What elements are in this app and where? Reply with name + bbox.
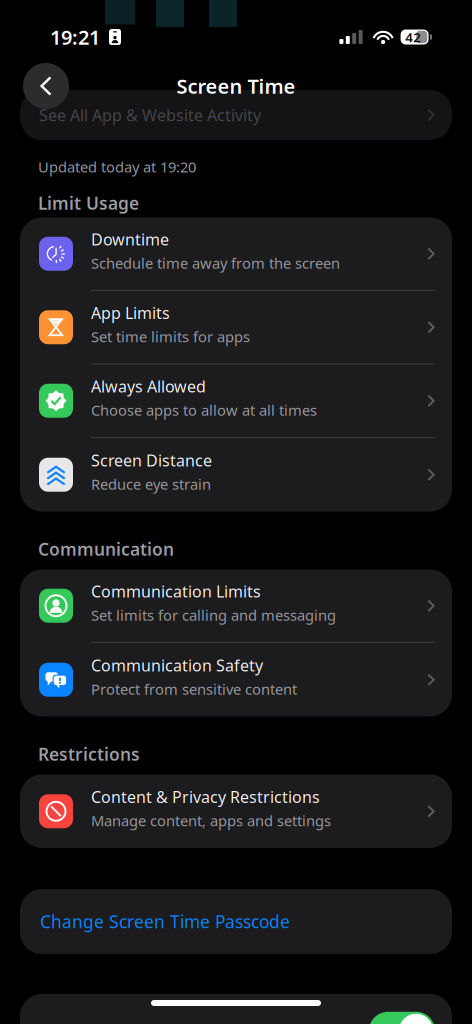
staticText: Communication Safety — [91, 655, 263, 676]
staticText: Set time limits for apps — [91, 327, 250, 346]
staticText: Limit Usage — [38, 191, 139, 214]
staticText: Manage content, apps and settings — [91, 811, 331, 830]
staticText: Screen Time — [176, 73, 295, 99]
staticText: 42 — [405, 28, 421, 46]
staticText: Change Screen Time Passcode — [40, 910, 290, 933]
button[interactable]: Change Screen Time Passcode — [20, 889, 452, 954]
button[interactable]: App Limits — [20, 291, 452, 364]
staticText: Always Allowed — [91, 376, 206, 397]
staticText: Content & Privacy Restrictions — [91, 786, 320, 807]
staticText: Restrictions — [38, 742, 140, 765]
staticText: Choose apps to allow at all times — [91, 400, 317, 420]
button[interactable]: Communication Limits — [20, 569, 452, 643]
button[interactable]: Content & Privacy Restrictions — [20, 774, 452, 848]
staticText: Screen Distance — [91, 450, 212, 471]
button[interactable]: Always Allowed — [20, 364, 452, 438]
button[interactable]: Screen Distance — [20, 438, 452, 511]
staticText: See All App & Website Activity — [39, 104, 261, 126]
staticText: Updated today at 19:20 — [38, 157, 196, 176]
button[interactable]: Downtime — [20, 217, 452, 291]
staticText: Set limits for calling and messaging — [91, 605, 336, 625]
staticText: Downtime — [91, 229, 169, 250]
button[interactable]: Communication Safety — [20, 643, 452, 716]
staticText: Reduce eye strain — [91, 474, 211, 494]
staticText: App Limits — [91, 302, 170, 323]
button[interactable]: Back — [23, 63, 69, 109]
staticText: Communication Limits — [91, 581, 261, 602]
staticText: Communication — [38, 537, 174, 560]
staticText: Schedule time away from the screen — [91, 253, 340, 273]
staticText: Protect from sensitive content — [91, 679, 297, 699]
staticText: 19:21 — [50, 24, 100, 50]
